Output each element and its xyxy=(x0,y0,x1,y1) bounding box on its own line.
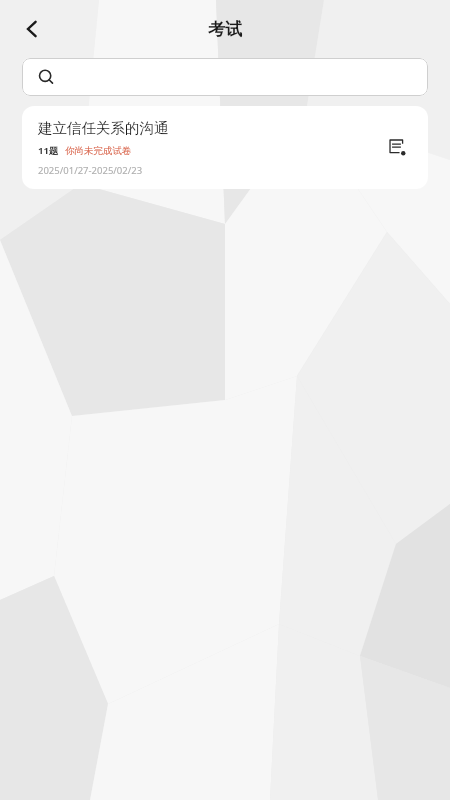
staticText: 2025/01/27-2025/02/23 xyxy=(38,164,143,177)
staticText: 考试 xyxy=(208,19,242,40)
button[interactable]: Back xyxy=(10,7,54,51)
staticText: 建立信任关系的沟通 xyxy=(38,119,169,137)
staticText: 你尚未完成试卷 xyxy=(65,145,132,157)
button[interactable]: 建立信任关系的沟通 xyxy=(22,106,428,189)
staticText: 11题 xyxy=(38,144,59,157)
button[interactable] xyxy=(22,58,428,96)
other: Exam paper xyxy=(389,139,406,156)
